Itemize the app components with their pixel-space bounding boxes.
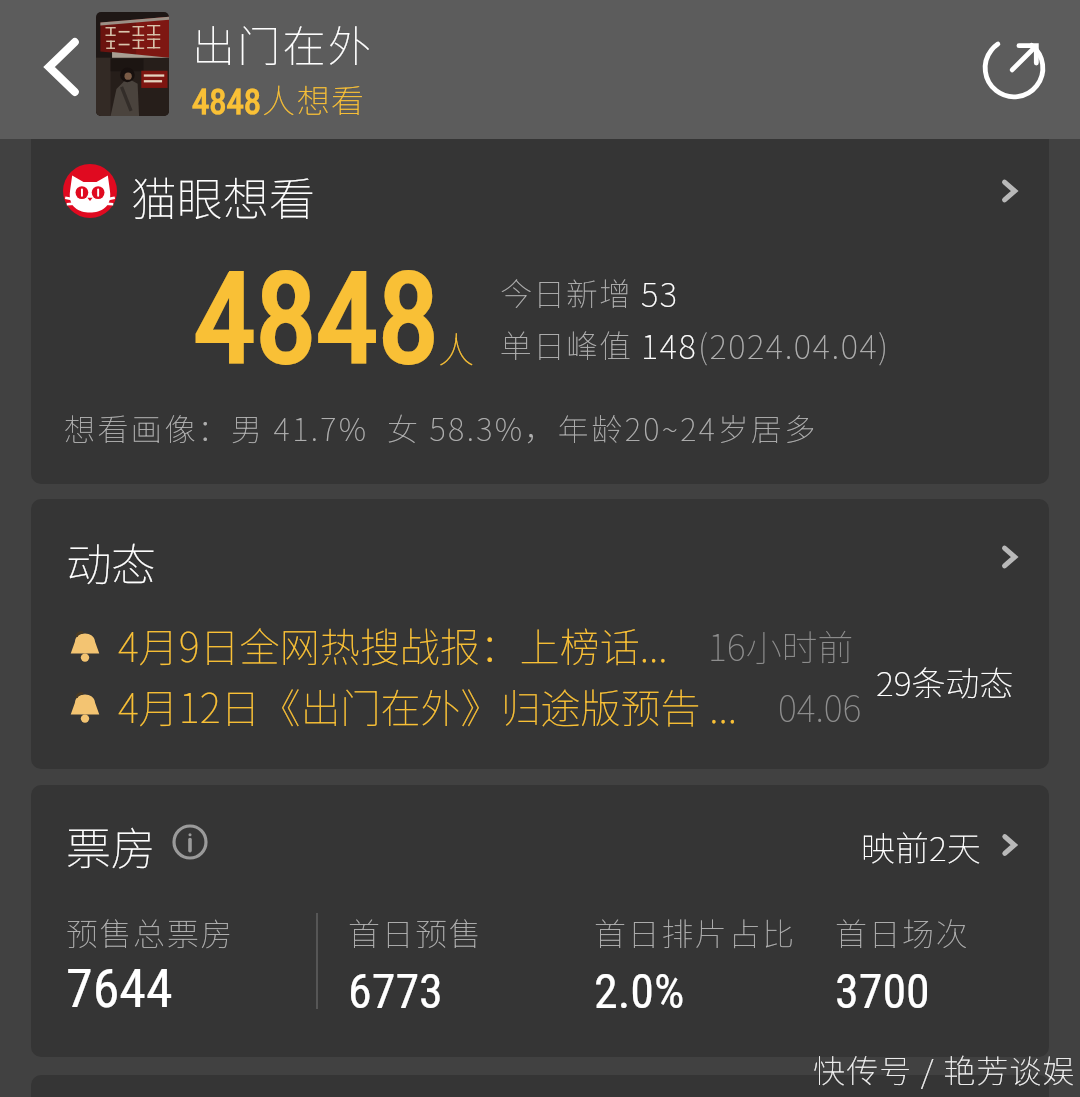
button[interactable]: 4月9日全网热搜战报：上榜话... — [64, 616, 854, 674]
button[interactable]: 猫眼想看 — [31, 163, 1049, 219]
staticText: 快传号 / 艳芳谈娱 — [813, 1046, 1076, 1092]
staticText: 人 — [438, 321, 475, 373]
button[interactable]: 票房 — [31, 813, 1049, 871]
staticText: 4848 — [194, 247, 439, 392]
staticText: 4月12日《出门在外》归途版预告 ... — [118, 677, 738, 735]
staticText: 首日预售 — [348, 909, 483, 955]
staticText: (2024.04.04) — [698, 321, 890, 369]
staticText: 148 — [641, 321, 698, 369]
button[interactable]: 动态 — [31, 529, 1049, 585]
staticText: 出门在外 — [192, 12, 373, 74]
button[interactable]: Back — [22, 25, 106, 109]
staticText: 首日排片占比 — [594, 909, 796, 955]
staticText: 3700 — [835, 963, 930, 1019]
staticText: 预售总票房 — [66, 909, 235, 955]
staticText: 今日新增 — [500, 269, 641, 315]
staticText: 4月9日全网热搜战报：上榜话... — [118, 616, 668, 674]
staticText: 2.0% — [594, 963, 685, 1019]
button[interactable]: Share — [974, 28, 1054, 108]
staticText: 人想看 — [262, 75, 366, 123]
button[interactable]: 4月12日《出门在外》归途版预告 ... — [64, 677, 862, 735]
staticText: 首日场次 — [835, 909, 970, 955]
staticText: 票房 — [66, 813, 157, 871]
staticText: 53 — [641, 269, 679, 317]
staticText: 动态 — [66, 529, 157, 585]
staticText: 16小时前 — [708, 619, 854, 671]
staticText: 猫眼想看 — [131, 163, 315, 219]
staticText: 想看画像：男 41.7% 女 58.3%，年龄20~24岁居多 — [64, 405, 818, 450]
staticText: 映前2天 — [861, 822, 981, 871]
staticText: 单日峰值 — [500, 321, 641, 367]
staticText: 29条动态 — [876, 657, 1014, 706]
staticText: 04.06 — [778, 680, 862, 732]
staticText: 7644 — [66, 957, 173, 1020]
staticText: 4848 — [192, 82, 262, 123]
staticText: 6773 — [348, 963, 443, 1019]
